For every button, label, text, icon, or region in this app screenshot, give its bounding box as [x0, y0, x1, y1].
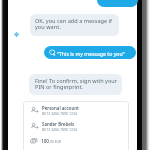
staticText: Personal account [42, 105, 79, 111]
button[interactable]: Personal account [23, 101, 129, 150]
staticText: OK, you can add a message if you want. [35, 17, 117, 31]
staticText: BE12 3456 7890 1234 [42, 111, 77, 116]
button[interactable]: “This is my message to you” [44, 46, 136, 59]
staticText: 100 [41, 138, 49, 144]
staticText: ,00 EUR [49, 139, 62, 144]
staticText: “This is my message to you” [57, 50, 125, 57]
staticText: BE12 3456 7890 1234 [42, 127, 77, 132]
staticText: Sander Brebels [42, 121, 75, 127]
staticText: Fine! To confirm, sign with your PIN or … [35, 77, 119, 91]
